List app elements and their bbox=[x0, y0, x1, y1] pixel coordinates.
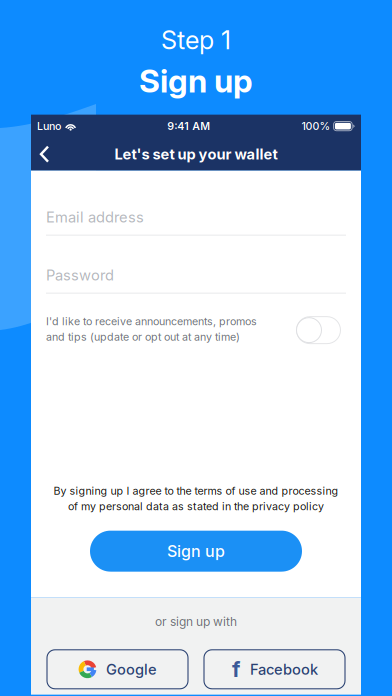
staticText: of my personal data as stated in the pri… bbox=[68, 500, 324, 513]
staticText: I'd like to receive announcements, promo… bbox=[46, 315, 257, 328]
staticText: Password bbox=[46, 267, 114, 284]
staticText: or sign up with bbox=[155, 615, 237, 629]
staticText: Email address bbox=[46, 209, 144, 226]
staticText: Let's set up your wallet bbox=[114, 145, 277, 163]
staticText: Facebook bbox=[250, 661, 318, 678]
staticText: Step 1 bbox=[161, 25, 231, 55]
staticText: By signing up I agree to the terms of us… bbox=[53, 484, 338, 497]
staticText: Google bbox=[106, 661, 157, 678]
button[interactable]: Back bbox=[31, 139, 64, 169]
staticText: 9:41 AM bbox=[167, 120, 210, 132]
button[interactable]: Google bbox=[47, 650, 188, 689]
staticText: and tips (update or opt out at any time) bbox=[46, 331, 240, 343]
button[interactable]: Receive announcements toggle bbox=[294, 313, 346, 346]
staticText: Luno bbox=[37, 120, 61, 132]
staticText: f bbox=[232, 657, 240, 682]
staticText: Sign up bbox=[167, 542, 225, 561]
staticText: Sign up bbox=[139, 62, 253, 100]
button[interactable]: f bbox=[204, 650, 345, 689]
button[interactable]: Sign up bbox=[90, 531, 302, 572]
staticText: 100% bbox=[302, 120, 331, 132]
